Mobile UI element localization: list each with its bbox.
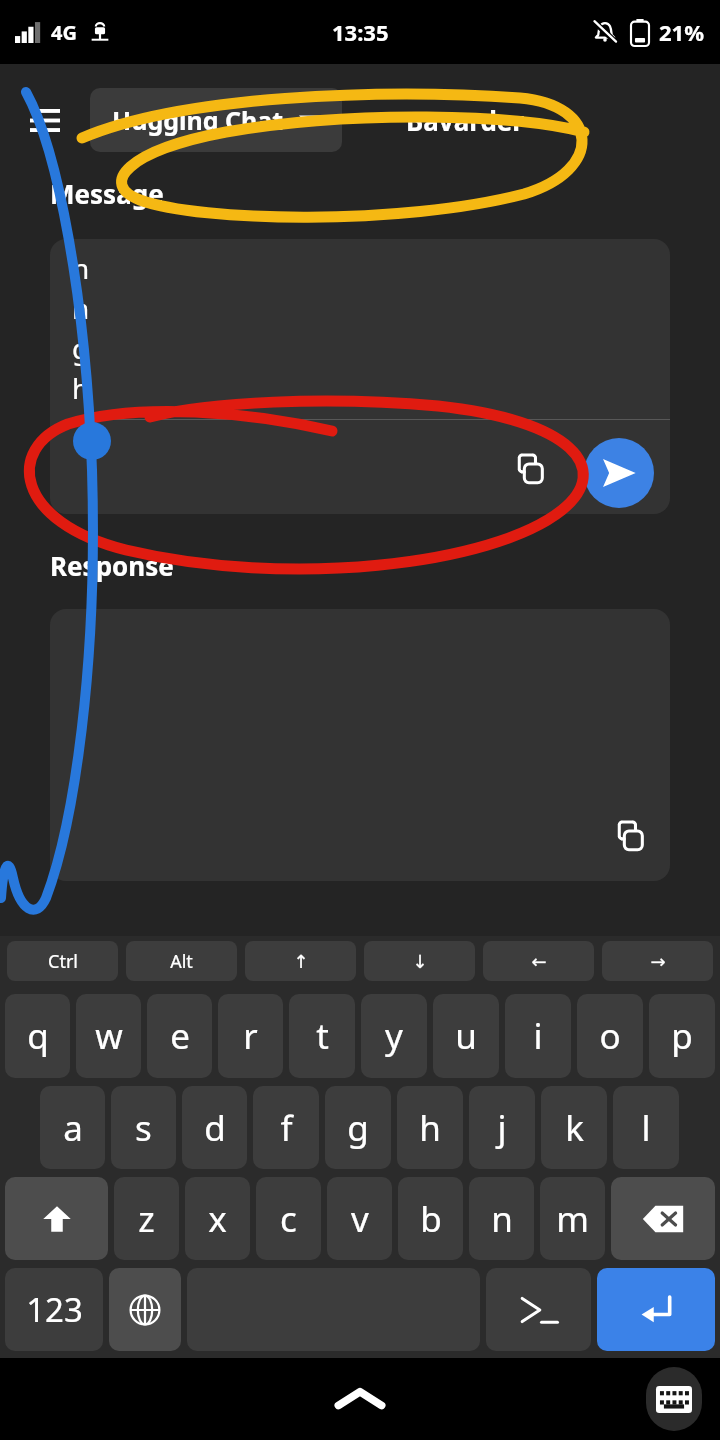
staticText: h <box>72 249 90 289</box>
button[interactable]: g <box>325 1086 391 1169</box>
staticText: u <box>455 1012 477 1060</box>
staticText: o <box>599 1012 621 1060</box>
staticText: y <box>385 1012 403 1060</box>
button[interactable]: Copy response <box>604 811 654 861</box>
staticText: ↑ <box>293 951 309 972</box>
staticText: w <box>95 1012 123 1060</box>
staticText: Bavarder <box>406 103 524 138</box>
button[interactable]: Back <box>321 1360 399 1438</box>
staticText: b <box>420 1195 442 1243</box>
button[interactable]: Hide keyboard <box>646 1367 702 1431</box>
button[interactable]: a <box>40 1086 105 1169</box>
button[interactable]: ← <box>483 941 594 981</box>
staticText: e <box>170 1012 190 1060</box>
button[interactable]: Open menu <box>22 97 68 143</box>
button[interactable]: l <box>613 1086 679 1169</box>
staticText: z <box>138 1195 155 1243</box>
button[interactable]: t <box>289 994 355 1078</box>
button[interactable]: s <box>111 1086 176 1169</box>
staticText: v <box>351 1195 369 1243</box>
staticText: m <box>556 1195 589 1243</box>
button[interactable]: Enter <box>597 1268 715 1351</box>
button[interactable]: Alt <box>126 941 237 981</box>
button[interactable]: Send <box>584 438 654 508</box>
button[interactable]: o <box>577 994 643 1078</box>
staticText: 4G <box>51 19 77 46</box>
button[interactable]: Terminal keys <box>486 1268 591 1351</box>
button[interactable]: f <box>253 1086 319 1169</box>
staticText: r <box>243 1012 258 1060</box>
staticText: Hugging Chat <box>112 103 284 137</box>
staticText: i <box>533 1012 543 1060</box>
staticText: ↓ <box>412 951 428 972</box>
button[interactable]: i <box>505 994 571 1078</box>
staticText: g <box>72 329 90 369</box>
button[interactable]: Switch language <box>109 1268 181 1351</box>
staticText: g <box>347 1104 369 1152</box>
button[interactable]: c <box>256 1177 321 1260</box>
staticText: 13:35 <box>332 17 389 47</box>
staticText: l <box>641 1104 651 1152</box>
button[interactable]: v <box>327 1177 392 1260</box>
button[interactable]: w <box>76 994 141 1078</box>
button[interactable]: m <box>540 1177 605 1260</box>
staticText: → <box>650 951 666 972</box>
staticText: h <box>72 289 90 329</box>
staticText: f <box>280 1104 293 1152</box>
staticText: a <box>63 1104 83 1152</box>
button[interactable]: z <box>114 1177 179 1260</box>
button[interactable]: p <box>649 994 715 1078</box>
button[interactable]: 123 <box>5 1268 103 1351</box>
button[interactable]: ↓ <box>364 941 475 981</box>
button[interactable]: k <box>541 1086 607 1169</box>
staticText: p <box>671 1012 693 1060</box>
button[interactable]: Hugging Chat <box>90 88 342 152</box>
button[interactable]: Copy message <box>504 444 554 494</box>
staticText: Ctrl <box>48 949 78 974</box>
staticText: Alt <box>170 949 193 974</box>
staticText: d <box>204 1104 226 1152</box>
button[interactable]: h <box>397 1086 463 1169</box>
button[interactable]: b <box>398 1177 463 1260</box>
button[interactable]: Ctrl <box>7 941 118 981</box>
staticText: c <box>280 1195 297 1243</box>
button[interactable]: e <box>147 994 212 1078</box>
staticText: h <box>72 369 90 409</box>
button[interactable]: d <box>182 1086 247 1169</box>
staticText: Response <box>50 548 174 583</box>
button[interactable]: u <box>433 994 499 1078</box>
staticText: k <box>565 1104 584 1152</box>
button[interactable]: n <box>469 1177 534 1260</box>
staticText: t <box>316 1012 329 1060</box>
button[interactable]: j <box>469 1086 535 1169</box>
staticText: 123 <box>26 1287 83 1332</box>
staticText: h <box>419 1104 441 1152</box>
button[interactable]: q <box>5 994 70 1078</box>
staticText: q <box>27 1012 49 1060</box>
button[interactable]: ↑ <box>245 941 356 981</box>
staticText: n <box>491 1195 513 1243</box>
staticText: ← <box>531 951 547 972</box>
staticText: s <box>135 1104 152 1152</box>
button[interactable]: Backspace <box>611 1177 715 1260</box>
button[interactable]: y <box>361 994 427 1078</box>
button[interactable]: r <box>218 994 283 1078</box>
button[interactable]: x <box>185 1177 250 1260</box>
staticText: j <box>497 1104 507 1152</box>
button[interactable]: → <box>602 941 713 981</box>
staticText: x <box>208 1195 227 1243</box>
staticText: Message <box>50 176 164 211</box>
button[interactable]: Shift <box>5 1177 108 1260</box>
staticText: 21% <box>659 17 705 47</box>
